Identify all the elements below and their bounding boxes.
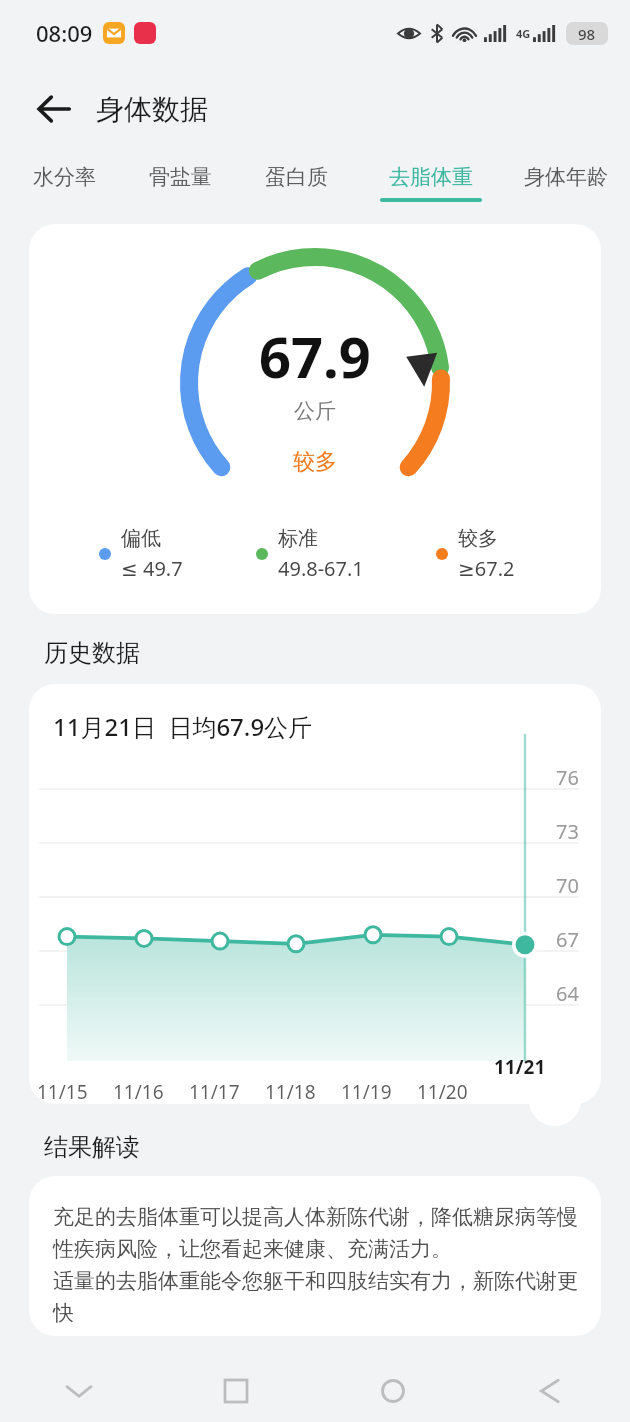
staticText: 11/20 xyxy=(417,1079,468,1104)
staticText: 4G xyxy=(516,26,531,41)
button[interactable]: 水分率 xyxy=(6,152,122,214)
staticText: 67.9 xyxy=(259,318,371,394)
staticText: 标准 xyxy=(278,526,318,551)
button[interactable]: 返回 xyxy=(526,1366,576,1416)
staticText: 11/18 xyxy=(265,1079,316,1104)
button[interactable]: 去脂体重 xyxy=(355,152,507,214)
staticText: 73 xyxy=(556,818,579,845)
staticText: 公斤 xyxy=(294,398,336,424)
button[interactable]: 返回 xyxy=(26,81,82,137)
staticText: 结果解读 xyxy=(44,1132,140,1162)
button[interactable]: 主页 xyxy=(368,1366,418,1416)
staticText: 蛋白质 xyxy=(265,164,328,190)
staticText: 11月21日 日均67.9公斤 xyxy=(53,710,313,743)
staticText: 骨盐量 xyxy=(149,164,212,190)
staticText: 76 xyxy=(556,764,579,791)
staticText: 偏低 xyxy=(121,526,161,551)
button[interactable]: 最近任务 xyxy=(211,1366,261,1416)
button[interactable]: 骨盐量 xyxy=(122,152,238,214)
staticText: 70 xyxy=(556,872,579,899)
staticText: 11/15 xyxy=(37,1079,88,1104)
staticText: ≤ 49.7 xyxy=(121,555,183,582)
button[interactable]: 蛋白质 xyxy=(238,152,355,214)
staticText: 较多 xyxy=(293,448,337,476)
staticText: 身体数据 xyxy=(96,92,208,127)
staticText: 11/16 xyxy=(113,1079,164,1104)
staticText: 水分率 xyxy=(33,164,96,190)
staticText: 11/17 xyxy=(189,1079,240,1104)
button[interactable]: 日期滑块 xyxy=(529,1074,581,1126)
staticText: 64 xyxy=(556,980,579,1007)
staticText: 49.8-67.1 xyxy=(278,555,364,582)
staticText: 去脂体重 xyxy=(389,164,473,190)
staticText: 11/21 xyxy=(494,1054,546,1080)
staticText: 充足的去脂体重可以提高人体新陈代谢，降低糖尿病等慢性疾病风险，让您看起来健康、充… xyxy=(53,1204,583,1326)
staticText: 历史数据 xyxy=(44,638,140,668)
staticText: ≥67.2 xyxy=(458,555,515,582)
button[interactable]: 身体年龄 xyxy=(507,152,624,214)
staticText: 08:09 xyxy=(36,18,93,48)
staticText: 较多 xyxy=(458,526,498,551)
staticText: 身体年龄 xyxy=(524,164,608,190)
button[interactable]: 收起 xyxy=(54,1366,104,1416)
staticText: 11/19 xyxy=(341,1079,392,1104)
staticText: 98 xyxy=(578,24,596,44)
staticText: 67 xyxy=(556,926,579,953)
